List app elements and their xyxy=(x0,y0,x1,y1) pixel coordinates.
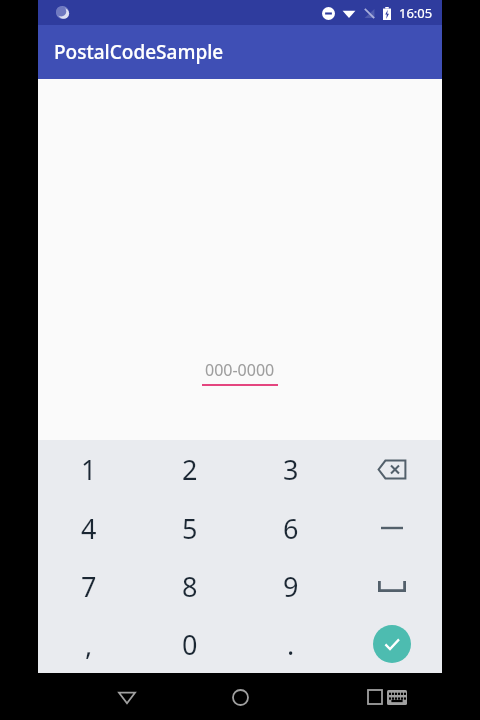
button[interactable]: Minus xyxy=(341,499,442,557)
button[interactable]: Back xyxy=(105,675,149,719)
button[interactable]: 2 xyxy=(139,440,240,499)
button[interactable]: 4 xyxy=(38,499,139,557)
button[interactable]: , xyxy=(38,615,139,673)
button[interactable]: Space xyxy=(341,557,442,615)
staticText: 9 xyxy=(283,568,299,605)
button[interactable]: . xyxy=(240,615,341,673)
staticText: 000-0000 xyxy=(205,359,275,381)
button[interactable]: 1 xyxy=(38,440,139,499)
staticText: 16:05 xyxy=(399,4,433,22)
button[interactable]: 3 xyxy=(240,440,341,499)
button[interactable]: Switch keyboard xyxy=(379,679,415,715)
button[interactable]: 6 xyxy=(240,499,341,557)
staticText: PostalCodeSample xyxy=(54,39,224,65)
staticText: 6 xyxy=(283,510,299,547)
staticText: 7 xyxy=(81,568,97,605)
staticText: 0 xyxy=(182,626,198,663)
button[interactable]: 000-0000 xyxy=(202,359,278,381)
button[interactable]: Delete xyxy=(341,440,442,499)
staticText: 3 xyxy=(283,451,299,488)
staticText: 8 xyxy=(182,568,198,605)
button[interactable]: 9 xyxy=(240,557,341,615)
button[interactable]: 5 xyxy=(139,499,240,557)
staticText: 1 xyxy=(81,451,97,488)
staticText: 2 xyxy=(182,451,198,488)
button[interactable]: 0 xyxy=(139,615,240,673)
button[interactable]: Recents xyxy=(355,677,395,717)
button[interactable]: 8 xyxy=(139,557,240,615)
staticText: , xyxy=(85,626,93,663)
staticText: . xyxy=(287,626,295,663)
button[interactable]: Home xyxy=(218,675,262,719)
staticText: 5 xyxy=(182,510,198,547)
button[interactable]: Done xyxy=(341,615,442,673)
staticText: 4 xyxy=(81,510,97,547)
button[interactable]: 7 xyxy=(38,557,139,615)
